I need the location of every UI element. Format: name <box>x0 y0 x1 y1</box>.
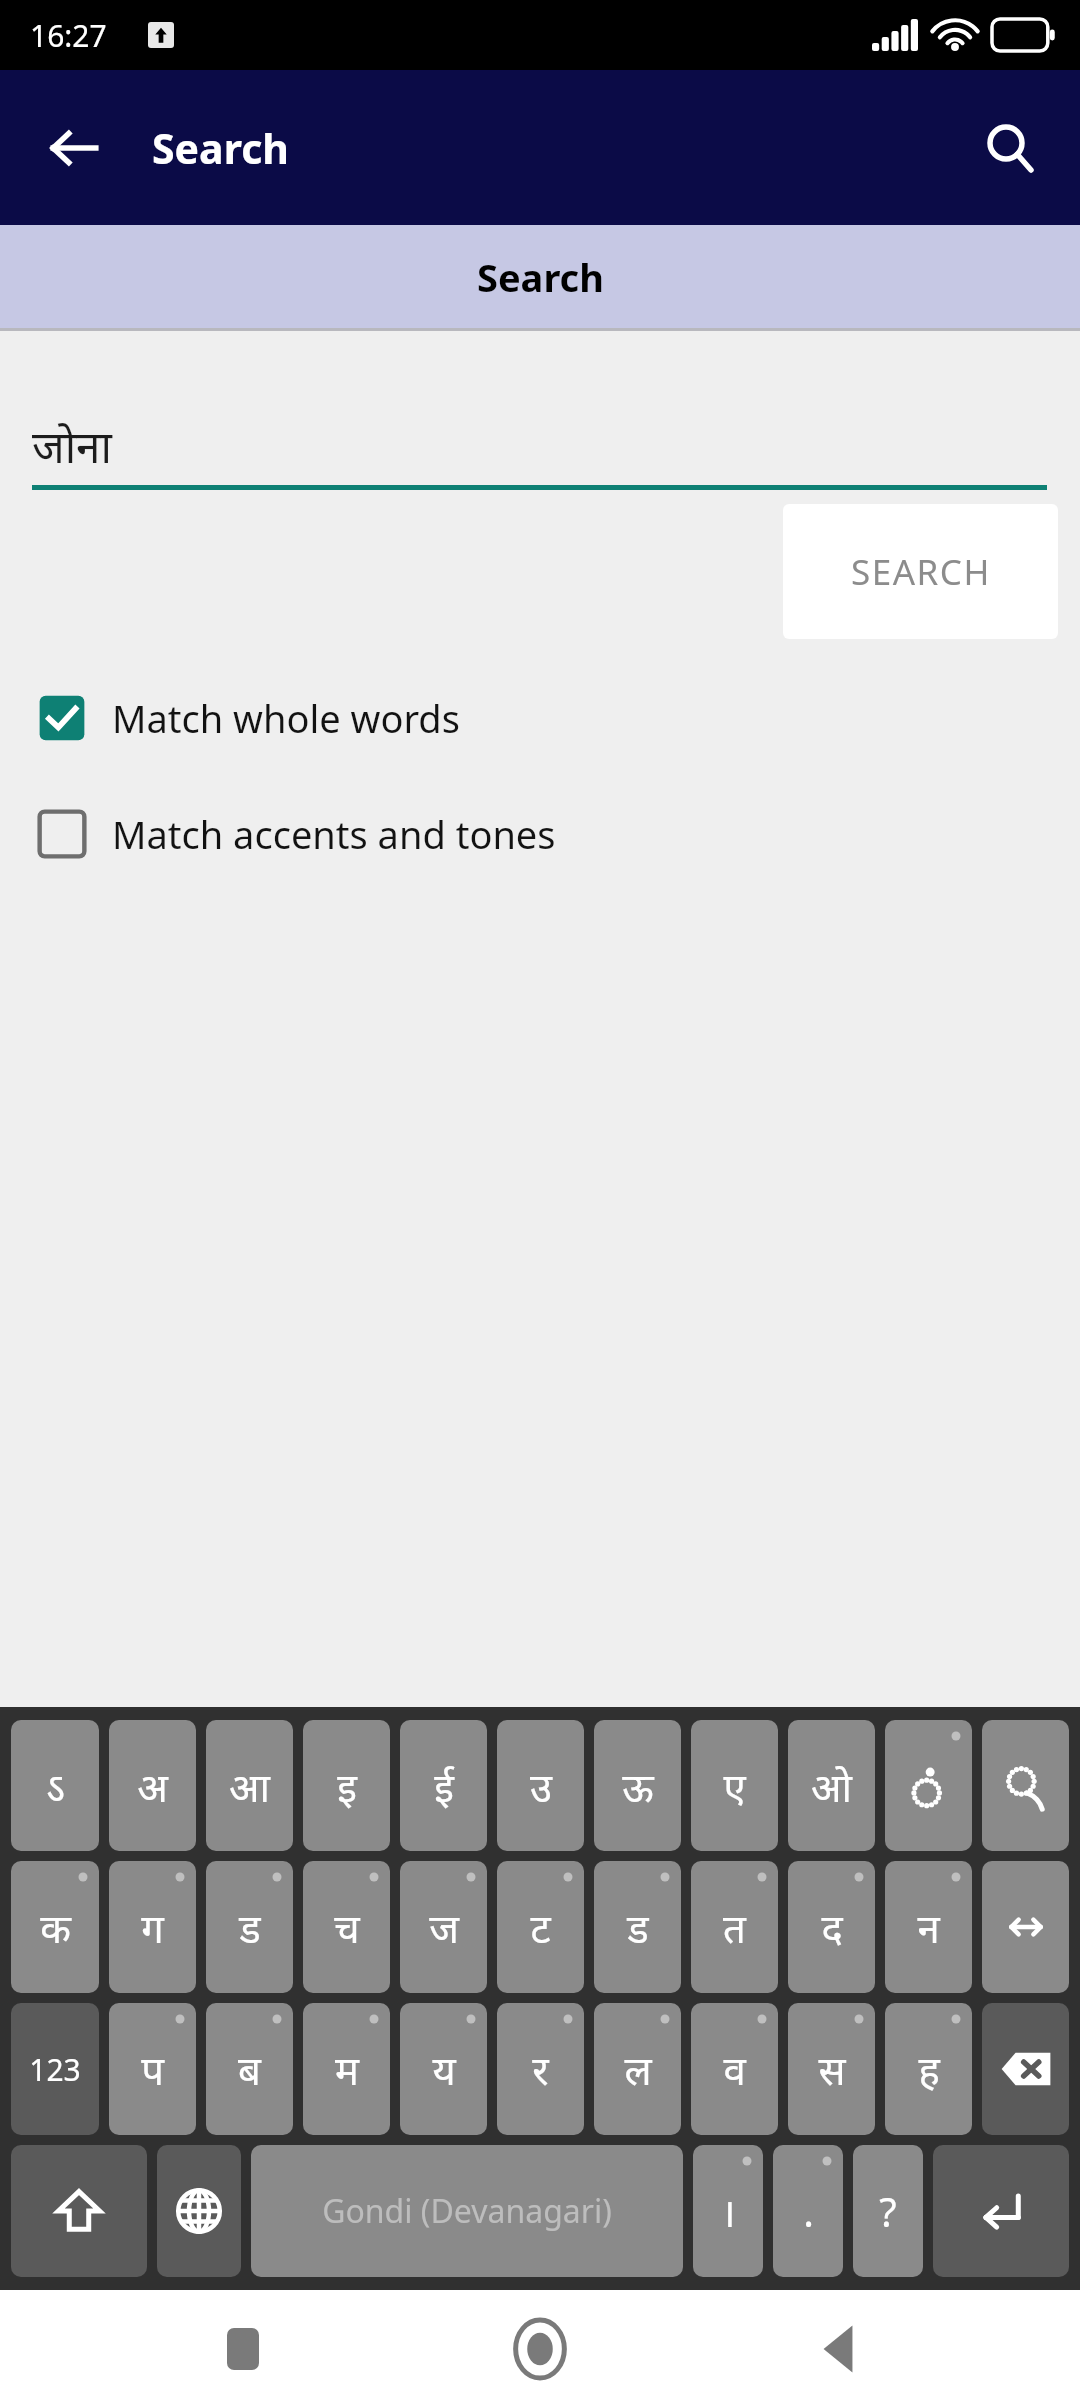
staticText: 123 <box>29 2049 81 2090</box>
button[interactable]: द <box>788 1861 875 1993</box>
staticText: ऽ <box>46 1759 65 1813</box>
button[interactable]: व <box>691 2003 778 2135</box>
button[interactable]: न <box>885 1861 972 1993</box>
button[interactable]: आ <box>206 1720 293 1851</box>
button[interactable]: Backspace <box>982 2003 1069 2135</box>
staticText: ? <box>879 2184 897 2238</box>
button[interactable]: म <box>303 2003 390 2135</box>
button[interactable]: Gondi (Devanagari) <box>251 2145 683 2277</box>
button[interactable]: Shift <box>11 2145 147 2277</box>
staticText: न <box>917 1900 940 1954</box>
button[interactable]: स <box>788 2003 875 2135</box>
staticText: इ <box>337 1759 357 1813</box>
staticText: ल <box>624 2042 652 2096</box>
staticText: र <box>532 2042 549 2096</box>
staticText: ओ <box>811 1759 852 1813</box>
button[interactable]: Search <box>962 100 1058 196</box>
button[interactable]: अ <box>109 1720 196 1851</box>
button[interactable]: Match whole words <box>36 680 460 756</box>
button[interactable]: 123 <box>11 2003 99 2135</box>
staticText: ब <box>238 2042 261 2096</box>
staticText: । <box>720 2184 736 2238</box>
staticText: ट <box>530 1900 551 1954</box>
button[interactable]: ए <box>691 1720 778 1851</box>
button[interactable]: Back <box>26 100 122 196</box>
staticText: Match whole words <box>112 692 460 744</box>
button[interactable]: ओ <box>788 1720 875 1851</box>
button[interactable]: Anusvara <box>885 1720 972 1851</box>
button[interactable]: Switch layout <box>982 1861 1069 1993</box>
button[interactable]: ज <box>400 1861 487 1993</box>
staticText: अ <box>137 1759 168 1813</box>
button[interactable]: । <box>693 2145 763 2277</box>
button[interactable]: ड <box>594 1861 681 1993</box>
staticText: ई <box>434 1759 454 1813</box>
button[interactable]: प <box>109 2003 196 2135</box>
staticText: ड <box>627 1900 649 1954</box>
button[interactable]: ग <box>109 1861 196 1993</box>
button[interactable]: Home <box>485 2294 595 2404</box>
staticText: ड <box>239 1900 261 1954</box>
button[interactable]: SEARCH <box>783 504 1058 639</box>
button[interactable]: ल <box>594 2003 681 2135</box>
button[interactable]: उ <box>497 1720 584 1851</box>
button[interactable]: ट <box>497 1861 584 1993</box>
button[interactable]: च <box>303 1861 390 1993</box>
staticText: ग <box>141 1900 164 1954</box>
button[interactable]: ऽ <box>11 1720 99 1851</box>
staticText: Search <box>152 120 289 176</box>
button[interactable]: त <box>691 1861 778 1993</box>
staticText: ह <box>918 2042 940 2096</box>
button[interactable]: ब <box>206 2003 293 2135</box>
staticText: व <box>723 2042 746 2096</box>
staticText: ऊ <box>622 1759 654 1813</box>
button[interactable]: Change language <box>157 2145 241 2277</box>
staticText: ज <box>429 1900 459 1954</box>
staticText: प <box>141 2042 164 2096</box>
button[interactable]: Back <box>783 2294 893 2404</box>
staticText: SEARCH <box>851 548 991 596</box>
button[interactable]: ऊ <box>594 1720 681 1851</box>
staticText: य <box>432 2042 456 2096</box>
button[interactable]: . <box>773 2145 843 2277</box>
staticText: क <box>40 1900 71 1954</box>
staticText: उ <box>530 1759 552 1813</box>
staticText: Match accents and tones <box>112 808 556 860</box>
staticText: स <box>818 2042 846 2096</box>
button[interactable]: Recent apps <box>188 2294 298 2404</box>
button[interactable]: इ <box>303 1720 390 1851</box>
button[interactable]: Match accents and tones <box>36 796 556 872</box>
button[interactable]: ई <box>400 1720 487 1851</box>
button[interactable]: Enter <box>933 2145 1069 2277</box>
staticText: म <box>335 2042 359 2096</box>
button[interactable]: य <box>400 2003 487 2135</box>
staticText: . <box>803 2184 814 2238</box>
button[interactable]: र <box>497 2003 584 2135</box>
staticText: Search <box>477 251 604 303</box>
button[interactable]: Vocalic R <box>982 1720 1069 1851</box>
button[interactable]: ? <box>853 2145 923 2277</box>
staticText: आ <box>229 1759 270 1813</box>
staticText: त <box>723 1900 746 1954</box>
button[interactable]: क <box>11 1861 99 1993</box>
staticText: जोना <box>32 416 112 476</box>
staticText: 16:27 <box>30 15 107 56</box>
staticText: च <box>334 1900 360 1954</box>
button[interactable]: ह <box>885 2003 972 2135</box>
staticText: Gondi (Devanagari) <box>322 2189 612 2233</box>
staticText: ए <box>723 1759 746 1813</box>
staticText: द <box>821 1900 843 1954</box>
button[interactable]: ड <box>206 1861 293 1993</box>
